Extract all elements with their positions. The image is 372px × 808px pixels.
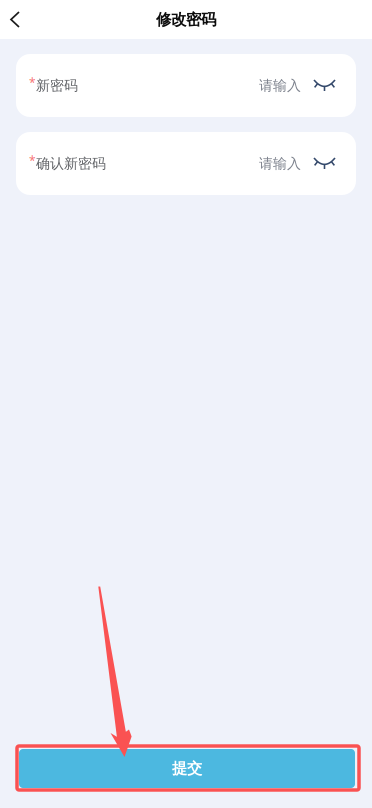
staticText: 请输入 xyxy=(259,77,301,94)
staticText: 新密码 xyxy=(36,77,78,94)
button[interactable]: Show password xyxy=(301,143,356,184)
staticText: 提交 xyxy=(172,759,202,778)
staticText: 请输入 xyxy=(259,155,301,172)
staticText: 确认新密码 xyxy=(36,155,106,172)
button[interactable]: Show password xyxy=(301,65,356,106)
button[interactable]: 提交 xyxy=(19,749,355,788)
staticText: * xyxy=(29,74,36,91)
staticText: * xyxy=(29,152,36,169)
staticText: 修改密码 xyxy=(156,10,216,29)
button[interactable]: Back xyxy=(0,0,35,39)
